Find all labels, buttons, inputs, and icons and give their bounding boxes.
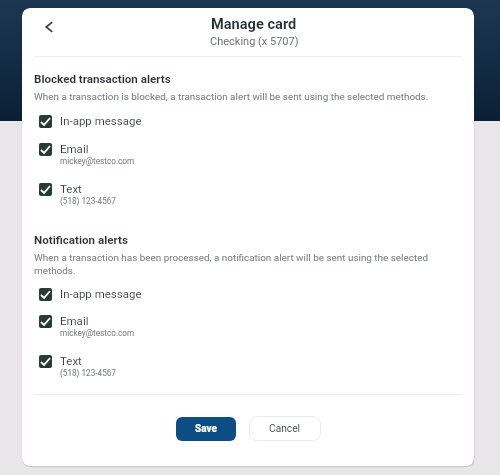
staticText: Manage card xyxy=(211,15,297,32)
staticText: Text xyxy=(60,182,82,195)
staticText: When a transaction has been processed, a… xyxy=(34,252,434,276)
staticText: Cancel xyxy=(269,423,301,435)
staticText: Checking (x 5707) xyxy=(210,35,299,48)
staticText: Blocked transaction alerts xyxy=(34,72,171,86)
button[interactable]: Email xyxy=(22,312,474,340)
button[interactable]: In-app message xyxy=(22,285,474,302)
button[interactable]: Text xyxy=(22,180,474,208)
button[interactable]: Save xyxy=(176,417,236,441)
staticText: Email xyxy=(60,142,89,155)
staticText: mickey@testco.com xyxy=(60,328,135,338)
staticText: Notification alerts xyxy=(34,233,128,247)
button[interactable]: Back xyxy=(36,14,62,40)
staticText: Text xyxy=(60,354,82,367)
button[interactable]: Email xyxy=(22,140,474,168)
staticText: In-app message xyxy=(60,114,142,127)
staticText: (518) 123-4567 xyxy=(60,196,116,206)
button[interactable]: Cancel xyxy=(249,416,321,441)
staticText: mickey@testco.com xyxy=(60,156,135,166)
staticText: Save xyxy=(195,423,217,435)
staticText: (518) 123-4567 xyxy=(60,368,116,378)
staticText: In-app message xyxy=(60,287,142,300)
button[interactable]: In-app message xyxy=(22,112,474,129)
button[interactable]: Text xyxy=(22,352,474,380)
staticText: When a transaction is blocked, a transac… xyxy=(34,91,429,103)
staticText: Email xyxy=(60,314,89,327)
